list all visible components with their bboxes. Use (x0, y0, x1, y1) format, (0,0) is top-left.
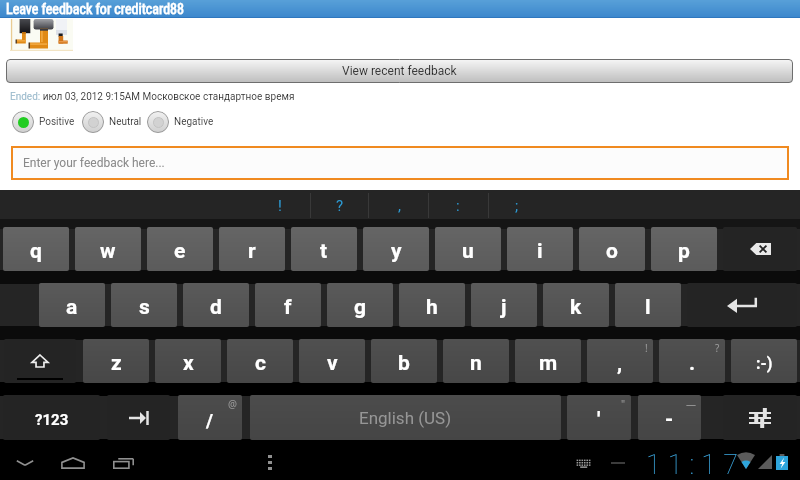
button[interactable]: e (147, 227, 213, 271)
button[interactable]: m (515, 339, 581, 383)
staticText: Neutral (109, 116, 142, 128)
button[interactable]: Positive (12, 110, 75, 134)
staticText: h (426, 295, 438, 320)
staticText: - (665, 407, 674, 432)
staticText: x (183, 351, 194, 376)
button[interactable]: l (615, 283, 681, 327)
staticText: n (470, 351, 482, 376)
button[interactable]: x (155, 339, 221, 383)
button[interactable]: ? (312, 194, 368, 218)
staticText: t (320, 239, 328, 264)
button[interactable]: Backspace (723, 227, 797, 271)
button[interactable]: f (255, 283, 321, 327)
button[interactable]: j (471, 283, 537, 327)
staticText: Ended: июл 03, 2012 9:15AM Московское ст… (10, 91, 295, 103)
staticText: y (391, 239, 402, 264)
button[interactable]: Home (49, 448, 97, 478)
staticText: ' (597, 407, 601, 432)
staticText: . (689, 351, 696, 376)
staticText: Enter your feedback here... (23, 156, 165, 170)
button[interactable]: r (219, 227, 285, 271)
staticText: : (456, 197, 460, 215)
button[interactable]: s (111, 283, 177, 327)
button[interactable]: d (183, 283, 249, 327)
button[interactable]: Hide keyboard (1, 448, 49, 478)
staticText: r (248, 239, 256, 264)
staticText: @ (228, 397, 237, 411)
staticText: , (617, 351, 623, 376)
staticText: English (US) (359, 408, 452, 428)
button[interactable]: p (651, 227, 717, 271)
button[interactable]: k (543, 283, 609, 327)
button[interactable]: c (227, 339, 293, 383)
staticText: Leave feedback for creditcard88 (6, 1, 184, 17)
button[interactable]: u (435, 227, 501, 271)
staticText: w (100, 239, 116, 264)
button[interactable]: Tab (107, 395, 170, 440)
staticText: 11:17 (646, 449, 745, 480)
staticText: l (645, 295, 651, 320)
button[interactable]: Shift (4, 339, 76, 383)
button[interactable]: More options (256, 447, 284, 477)
staticText: c (255, 351, 266, 376)
staticText: q (30, 239, 42, 264)
button[interactable]: :-) (731, 339, 797, 383)
button[interactable]: ; (489, 194, 545, 218)
button[interactable]: g (327, 283, 393, 327)
button[interactable]: - (638, 395, 701, 440)
staticText: ! (278, 197, 282, 215)
staticText: d (210, 295, 222, 320)
button[interactable]: / (178, 395, 242, 440)
staticText: p (678, 239, 690, 264)
button[interactable]: English (US) (250, 395, 561, 440)
button[interactable]: n (443, 339, 509, 383)
other: Keyboard active (576, 459, 591, 467)
staticText: :-) (756, 354, 773, 373)
button[interactable]: Neutral (82, 110, 142, 134)
staticText: j (501, 295, 507, 320)
button[interactable]: t (291, 227, 357, 271)
button[interactable]: Keyboard settings (723, 395, 797, 440)
button[interactable]: View recent feedback (6, 59, 793, 83)
button[interactable]: , (371, 194, 427, 218)
button[interactable]: i (507, 227, 573, 271)
staticText: / (206, 409, 214, 431)
button[interactable]: ' (567, 395, 631, 440)
staticText: u (462, 239, 474, 264)
staticText: ! (645, 341, 648, 355)
staticText: Positive (39, 116, 75, 128)
button[interactable]: Enter your feedback here... (11, 146, 789, 180)
staticText: " (621, 397, 626, 411)
button[interactable]: v (299, 339, 365, 383)
staticText: , (398, 197, 401, 215)
button[interactable]: h (399, 283, 465, 327)
button[interactable]: a (39, 283, 105, 327)
staticText: ? (336, 197, 344, 215)
staticText: f (284, 295, 292, 320)
button[interactable]: . (659, 339, 725, 383)
button[interactable]: w (75, 227, 141, 271)
staticText: k (570, 295, 582, 320)
button[interactable]: Recent apps (99, 448, 147, 478)
staticText: g (354, 295, 366, 320)
button[interactable]: ! (252, 194, 308, 218)
button[interactable]: Negative (147, 110, 214, 134)
button[interactable]: o (579, 227, 645, 271)
staticText: Negative (174, 116, 214, 128)
staticText: b (398, 351, 410, 376)
button[interactable]: y (363, 227, 429, 271)
staticText: — (686, 397, 696, 411)
button[interactable]: , (587, 339, 653, 383)
button[interactable]: : (430, 194, 486, 218)
button[interactable]: ?123 (3, 395, 100, 440)
button[interactable]: q (3, 227, 69, 271)
staticText: ? (715, 341, 720, 355)
staticText: s (139, 295, 150, 320)
staticText: a (66, 295, 78, 320)
staticText: m (539, 351, 558, 376)
staticText: v (327, 351, 338, 376)
button[interactable]: z (83, 339, 149, 383)
staticText: ?123 (35, 411, 69, 429)
button[interactable]: b (371, 339, 437, 383)
button[interactable]: Enter (687, 283, 797, 327)
